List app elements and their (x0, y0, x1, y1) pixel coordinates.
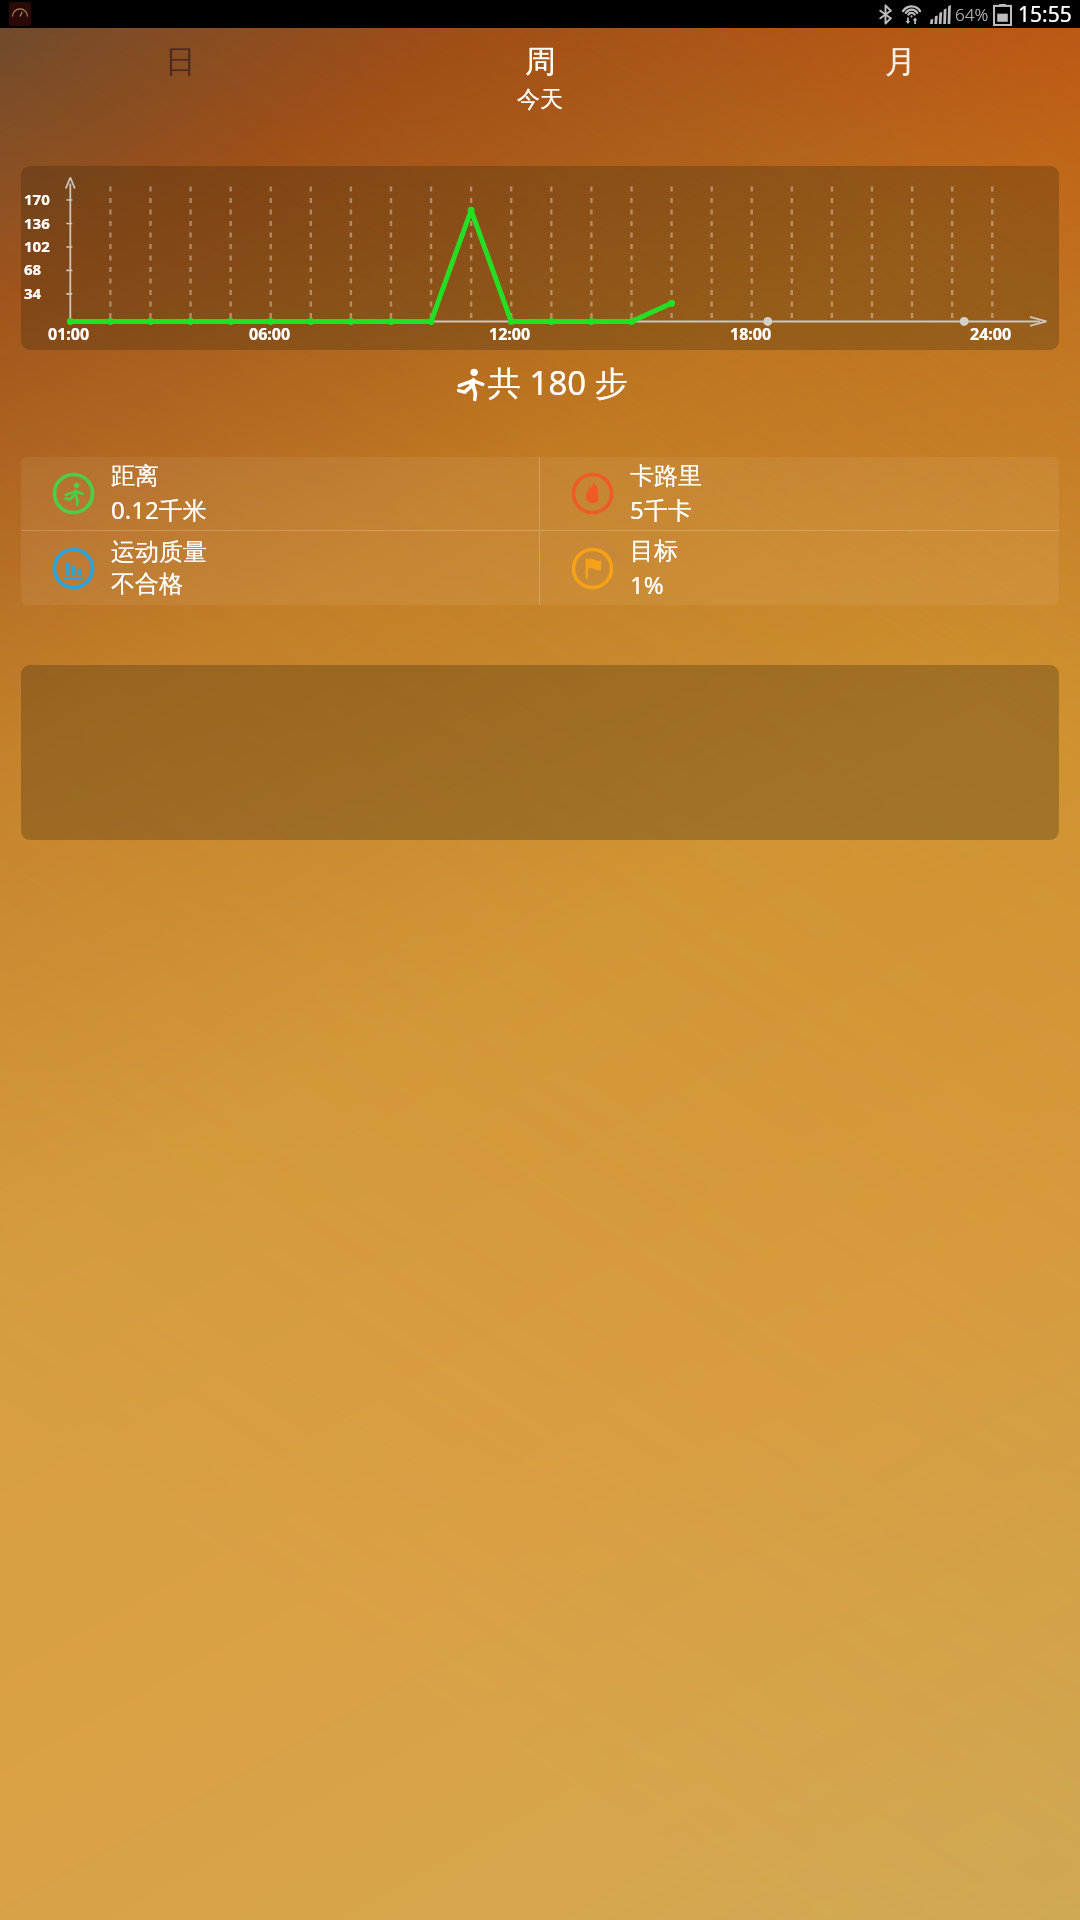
button[interactable]: 运动质量 (21, 531, 539, 605)
staticText: 0.12千米 (111, 493, 207, 526)
staticText: 102 (24, 236, 50, 256)
staticText: 目标 (630, 536, 678, 566)
staticText: 共 180 步 (488, 360, 628, 405)
staticText: 15:55 (1018, 0, 1072, 28)
button[interactable]: 共 180 步 (0, 360, 1080, 405)
button[interactable]: 170 (21, 166, 1059, 350)
button[interactable]: 距离 (21, 457, 539, 530)
staticText: 01:00 (48, 323, 90, 345)
other: App badge (9, 2, 31, 26)
staticText: 周 (525, 42, 556, 81)
staticText: 12:00 (489, 323, 531, 345)
staticText: 136 (24, 213, 50, 233)
staticText: 运动质量 (111, 537, 207, 567)
staticText: 68 (24, 259, 42, 279)
staticText: 卡路里 (630, 461, 702, 491)
staticText: 距离 (111, 461, 159, 491)
button[interactable]: 目标 (540, 531, 1059, 605)
button[interactable]: 卡路里 (540, 457, 1059, 530)
staticText: 34 (24, 283, 42, 303)
staticText: 18:00 (730, 323, 772, 345)
staticText: 170 (24, 189, 50, 209)
staticText: 06:00 (249, 323, 291, 345)
staticText: 5千卡 (630, 493, 692, 526)
staticText: 64% (955, 3, 989, 26)
staticText: 月 (885, 42, 916, 81)
button[interactable]: Details panel (21, 665, 1059, 840)
staticText: 今天 (517, 85, 563, 114)
staticText: 不合格 (111, 569, 183, 599)
button[interactable]: 月 (720, 28, 1080, 136)
button[interactable]: 周 (360, 28, 720, 136)
staticText: 24:00 (970, 323, 1012, 345)
button[interactable]: 日 (0, 28, 360, 136)
staticText: 1% (630, 568, 664, 601)
staticText: 日 (165, 42, 196, 81)
